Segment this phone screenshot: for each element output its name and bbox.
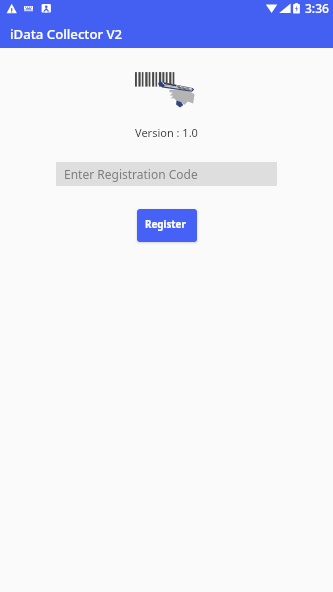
staticText: Enter Registration Code	[64, 166, 198, 182]
button[interactable]: Register	[137, 209, 197, 242]
staticText: Version : 1.0	[135, 125, 198, 140]
staticText: iData Collector V2	[10, 25, 123, 43]
staticText: Register	[145, 218, 186, 231]
staticText: 3:36	[305, 0, 329, 16]
button[interactable]: Enter Registration Code	[56, 162, 277, 186]
